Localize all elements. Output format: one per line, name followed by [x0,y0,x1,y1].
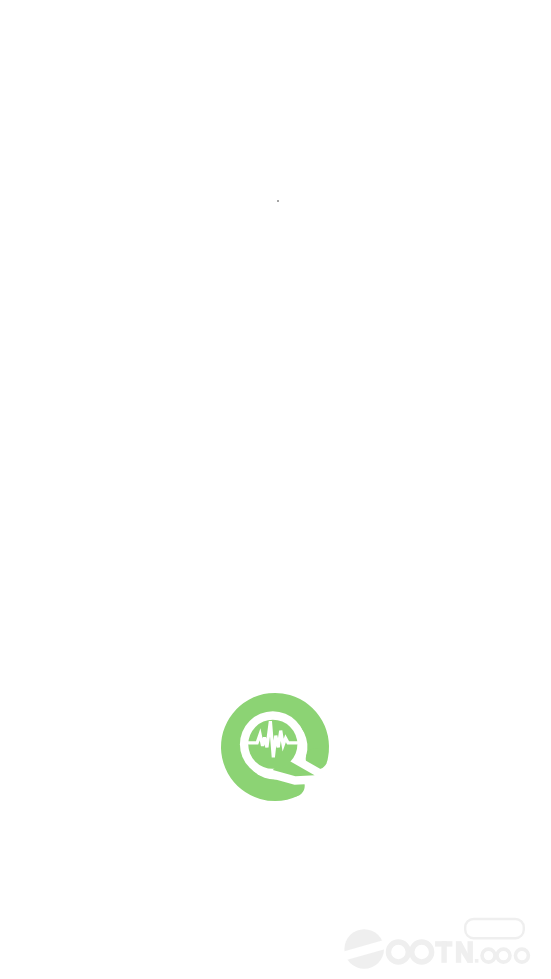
other: App logo [221,693,329,801]
